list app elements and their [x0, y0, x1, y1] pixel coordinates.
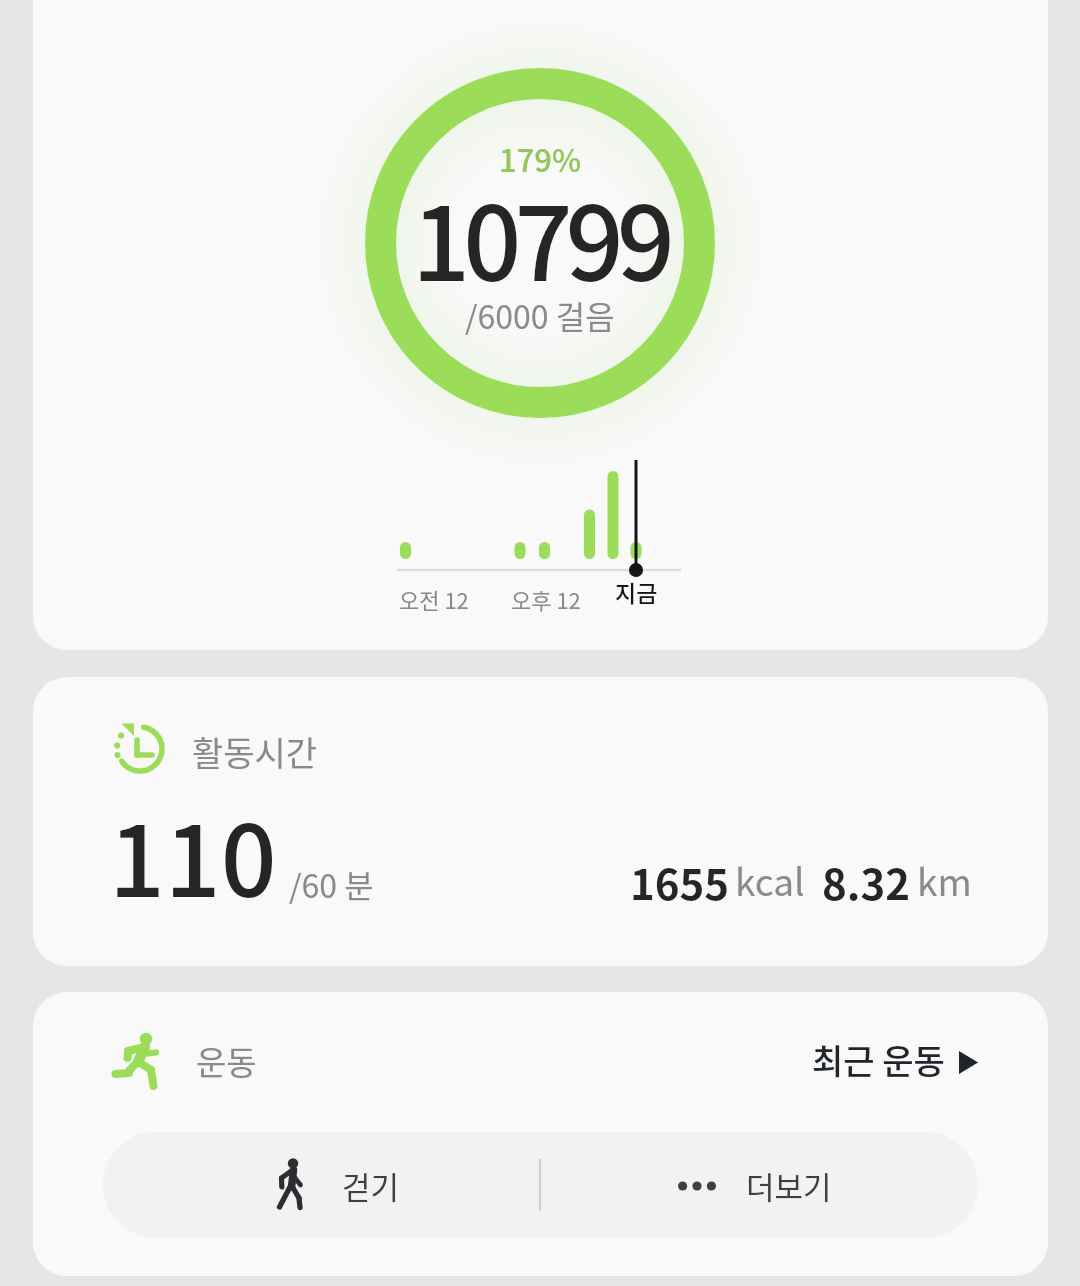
- staticText: /60 분: [289, 861, 374, 907]
- button[interactable]: [33, 0, 1048, 650]
- button[interactable]: 걷기: [103, 1132, 539, 1238]
- staticText: 최근 운동: [812, 1035, 945, 1084]
- staticText: 10799: [412, 163, 669, 311]
- button[interactable]: 더보기: [541, 1132, 978, 1238]
- staticText: /6000 걸음: [465, 292, 615, 338]
- staticText: 오전 12: [399, 583, 469, 615]
- staticText: kcal: [735, 853, 805, 907]
- staticText: 지금: [615, 575, 658, 608]
- staticText: 110: [109, 783, 277, 925]
- staticText: 활동시간: [192, 727, 318, 776]
- staticText: 걷기: [342, 1163, 400, 1208]
- staticText: 더보기: [746, 1163, 832, 1208]
- staticText: 179%: [499, 136, 582, 181]
- staticText: km: [917, 853, 972, 907]
- staticText: 1655: [630, 851, 730, 912]
- button[interactable]: [33, 677, 1048, 966]
- staticText: 8.32: [822, 851, 910, 912]
- other: Activity time: [110, 719, 172, 781]
- staticText: 운동: [196, 1037, 257, 1085]
- other: Exercise: [112, 1031, 160, 1093]
- staticText: 오후 12: [511, 583, 581, 615]
- button[interactable]: 최근 운동: [812, 1024, 978, 1090]
